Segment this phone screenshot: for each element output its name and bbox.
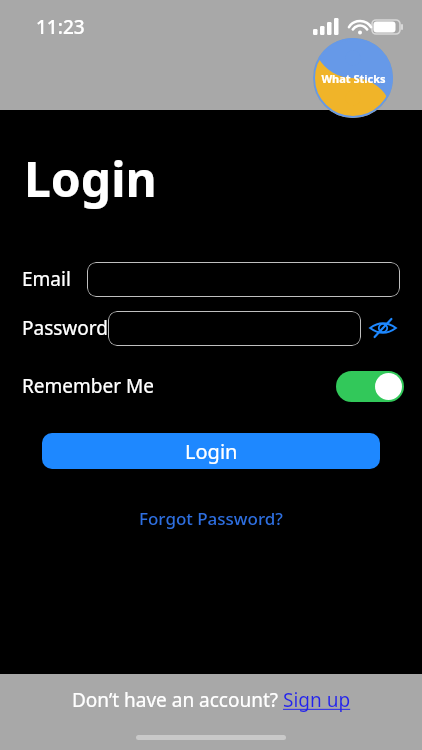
button[interactable]: Email input (87, 262, 400, 297)
staticText: Email (22, 266, 71, 292)
button[interactable]: Show password (368, 313, 398, 343)
button[interactable]: Remember Me toggle, on (336, 371, 404, 402)
button[interactable]: What Sticks logo (313, 38, 393, 118)
staticText: What Sticks (321, 71, 386, 86)
staticText: Don’t have an account? Sign up (72, 687, 351, 713)
button[interactable]: Forgot Password? (131, 503, 291, 534)
staticText: 11:23 (36, 14, 85, 40)
staticText: Login (185, 438, 238, 465)
button[interactable]: Don’t have an account? Sign up (66, 685, 357, 715)
button[interactable]: Login (42, 433, 380, 469)
button[interactable]: Password input (108, 311, 361, 346)
staticText: Forgot Password? (139, 507, 283, 530)
staticText: Remember Me (22, 373, 154, 399)
staticText: Password (22, 315, 108, 341)
staticText: Login (24, 146, 157, 211)
